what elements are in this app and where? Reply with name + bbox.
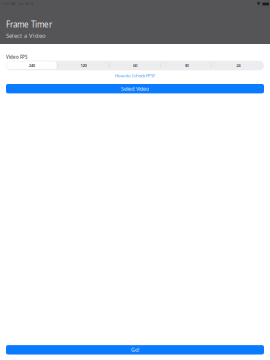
button[interactable]: 60 — [109, 61, 161, 70]
button[interactable]: How do I check FPS? — [0, 73, 270, 78]
staticText: Select Video — [121, 85, 149, 92]
staticText: Frame Timer — [6, 19, 52, 30]
staticText: Select a Video — [6, 31, 46, 39]
staticText: 30 — [185, 62, 189, 68]
button[interactable]: Go! — [6, 345, 264, 354]
button[interactable]: 120 — [58, 61, 109, 70]
staticText: Video FPS — [6, 54, 27, 60]
button[interactable]: Select Video — [6, 84, 264, 93]
staticText: How do I check FPS? — [115, 72, 155, 78]
staticText: 240 — [29, 62, 35, 68]
button[interactable]: 30 — [161, 61, 212, 70]
staticText: 60 — [133, 62, 137, 68]
button[interactable]: 240 — [6, 61, 58, 70]
staticText: Go! — [131, 346, 139, 353]
staticText: 9:41 AM Tue Oct 28 — [3, 2, 34, 6]
staticText: 24 — [236, 62, 240, 68]
button[interactable]: 24 — [212, 61, 264, 70]
staticText: 120 — [80, 62, 86, 68]
